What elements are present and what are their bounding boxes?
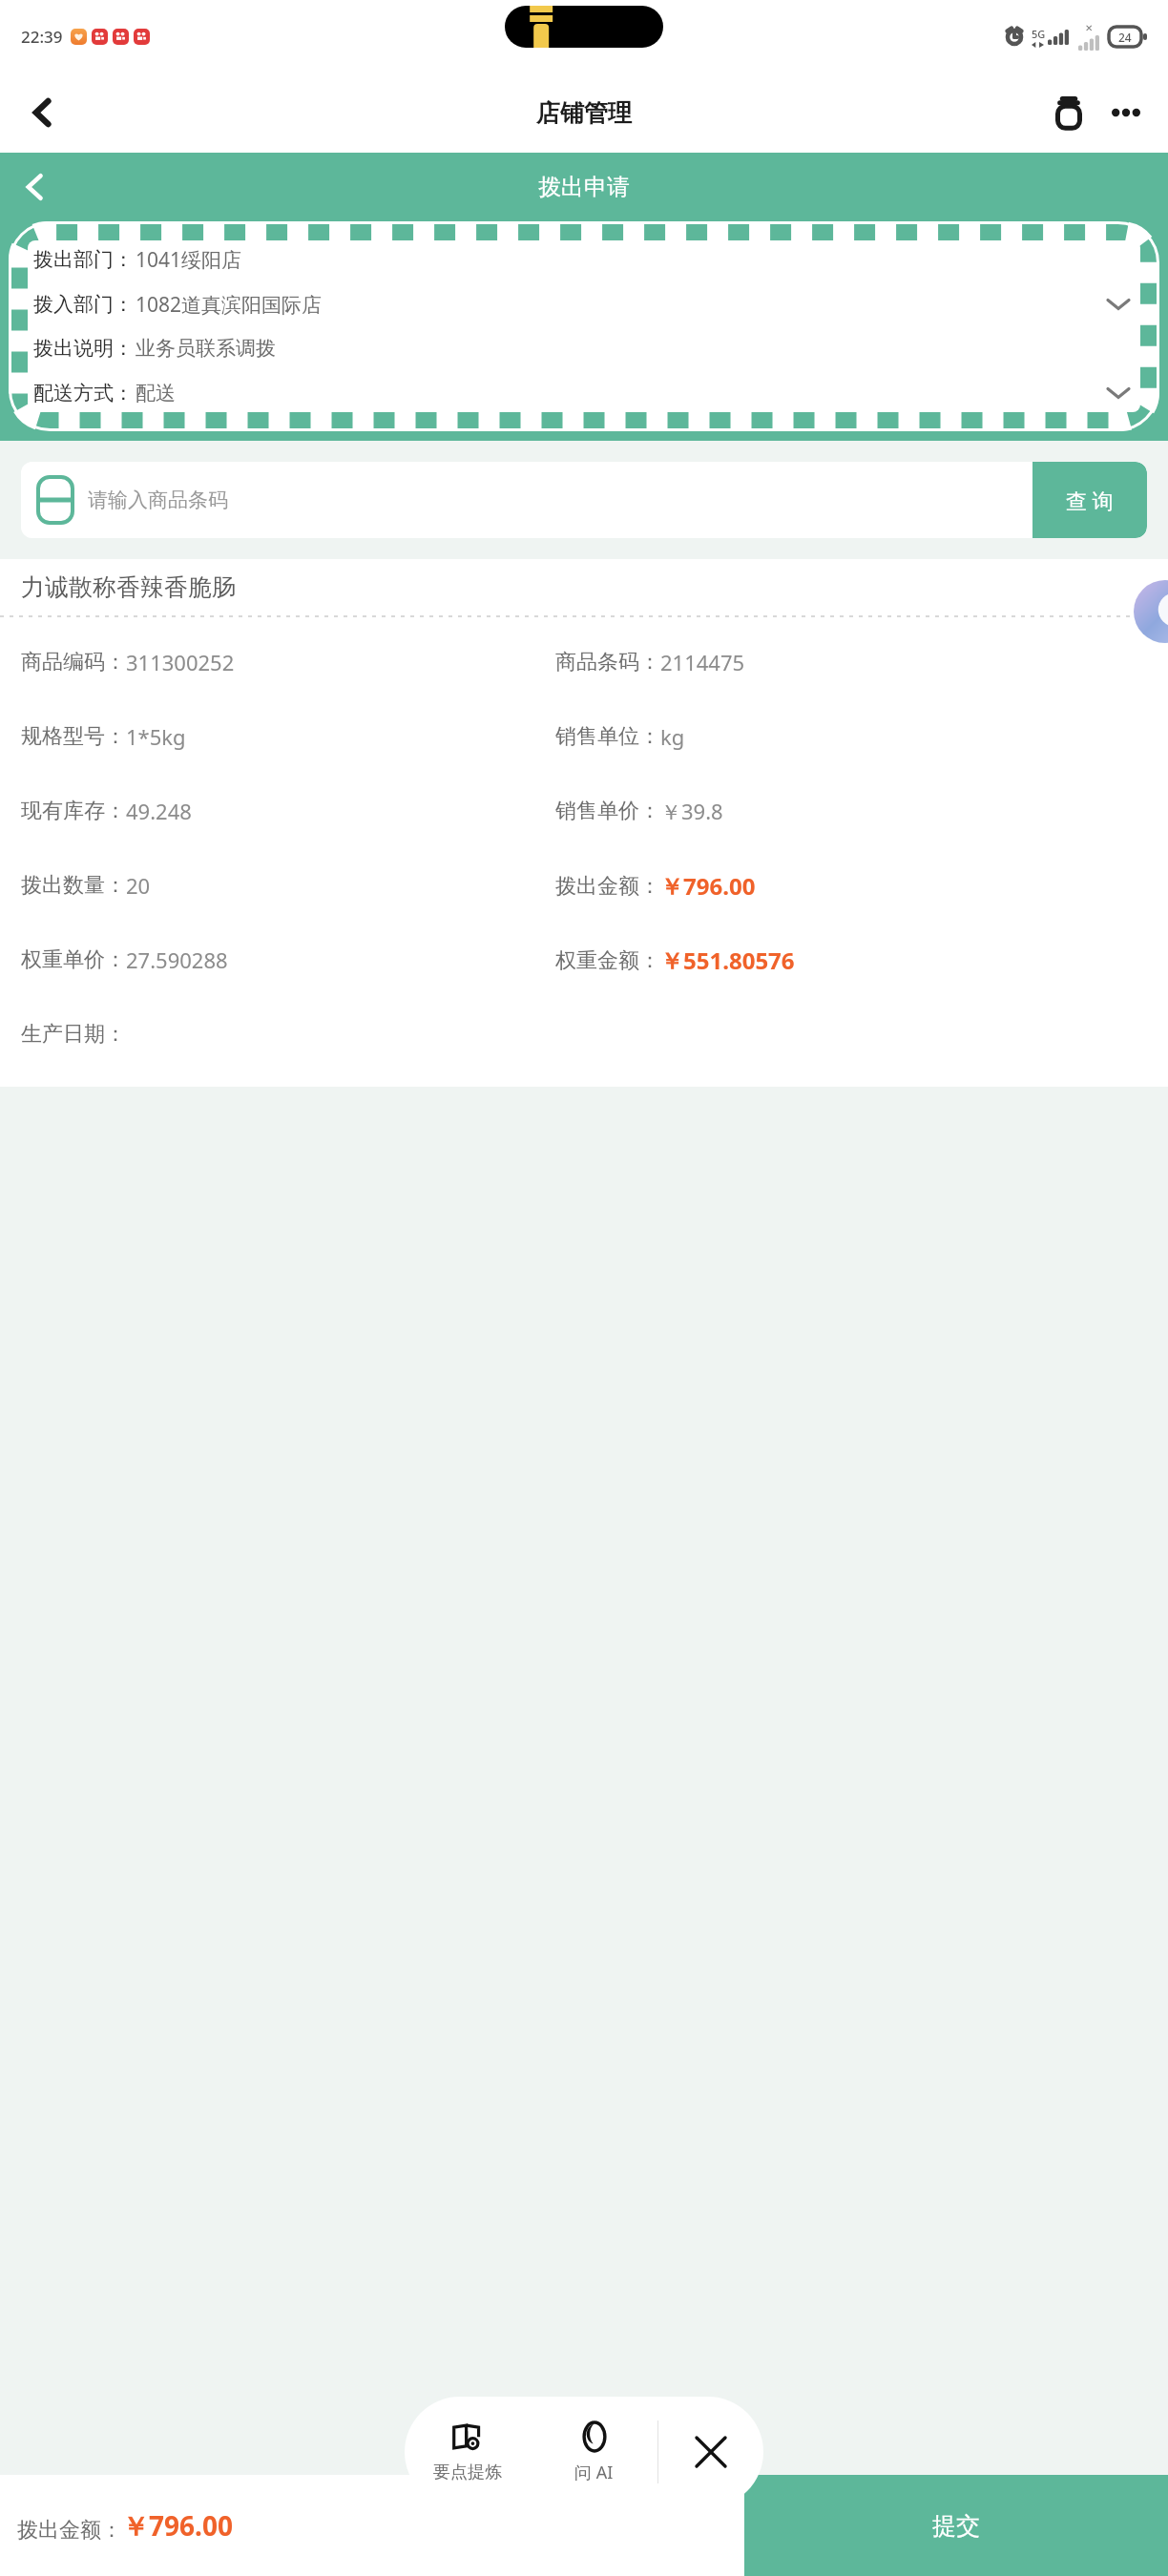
staticText: 拨出数量： <box>21 872 126 899</box>
staticText: 要点提炼 <box>433 2462 502 2483</box>
staticText: 销售单位： <box>555 723 660 750</box>
staticText: 拨出金额： <box>555 873 660 900</box>
staticText: 24 <box>1118 30 1132 45</box>
staticText: 权重金额： <box>555 947 660 974</box>
button[interactable]: 多任务 <box>1040 84 1097 141</box>
staticText: 49.248 <box>126 797 192 825</box>
staticText: 规格型号： <box>21 723 126 750</box>
staticText: kg <box>660 722 685 751</box>
button[interactable]: 更多 <box>1097 84 1155 141</box>
staticText: ￥39.8 <box>660 797 723 825</box>
staticText: 权重单价： <box>21 946 126 973</box>
button[interactable]: 拨出部门： <box>33 239 1135 280</box>
staticText: 1041绥阳店 <box>136 246 242 274</box>
staticText: 2114475 <box>660 648 745 676</box>
staticText: 现有库存： <box>21 798 126 824</box>
button[interactable]: 问 AI <box>531 2397 657 2507</box>
staticText: ￥796.00 <box>660 870 756 902</box>
staticText: 27.590288 <box>126 945 228 974</box>
staticText: 拨出部门： <box>33 247 134 272</box>
staticText: 1082道真滨阳国际店 <box>136 291 323 319</box>
button[interactable]: AI 助手 <box>1134 580 1168 643</box>
staticText: 请输入商品条码 <box>88 488 228 512</box>
button[interactable]: 查 询 <box>1032 462 1147 538</box>
button[interactable]: 返回 <box>8 159 63 215</box>
button[interactable]: 请输入商品条码 <box>21 462 1032 538</box>
button[interactable]: 拨入部门： <box>33 284 1135 324</box>
button[interactable]: 要点提炼 <box>405 2397 531 2507</box>
staticText: ￥796.00 <box>122 2507 233 2544</box>
staticText: 力诚散称香辣香脆肠 <box>21 572 236 602</box>
staticText: 销售单价： <box>555 798 660 824</box>
staticText: 问 AI <box>574 2461 614 2484</box>
staticText: ￥551.80576 <box>660 945 795 976</box>
staticText: 拨出金额： <box>17 2517 122 2544</box>
staticText: 提交 <box>932 2511 980 2541</box>
button[interactable]: 配送方式： <box>33 373 1135 413</box>
staticText: 22:39 <box>21 26 63 48</box>
staticText: 拨出申请 <box>538 173 630 201</box>
staticText: 5G <box>1032 27 1046 41</box>
staticText: 311300252 <box>126 648 235 676</box>
staticText: 配送方式： <box>33 381 134 405</box>
staticText: 1*5kg <box>126 722 186 751</box>
button[interactable]: 提交 <box>744 2475 1168 2576</box>
staticText: 拨出说明： <box>33 336 134 361</box>
staticText: 业务员联系调拨 <box>136 336 276 361</box>
button[interactable]: 关闭 <box>658 2397 763 2507</box>
staticText: 配送 <box>136 381 176 405</box>
staticText: 20 <box>126 871 151 900</box>
button[interactable]: 返回 <box>13 83 73 142</box>
staticText: 店铺管理 <box>536 98 632 128</box>
staticText: ✕ <box>1085 23 1094 34</box>
staticText: 查 询 <box>1066 486 1114 514</box>
staticText: 商品条码： <box>555 649 660 675</box>
staticText: 生产日期： <box>21 1021 126 1048</box>
staticText: 商品编码： <box>21 649 126 675</box>
staticText: 拨入部门： <box>33 292 134 317</box>
button[interactable]: 拨出说明： <box>33 328 1135 368</box>
